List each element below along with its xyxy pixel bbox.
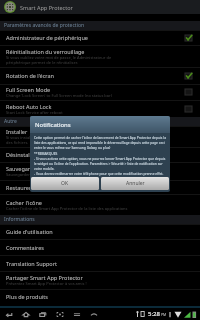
button[interactable]: Smart App Protector bbox=[0, 0, 200, 14]
button[interactable]: Commentaires bbox=[0, 239, 200, 255]
staticText: Désinstaller bbox=[6, 151, 37, 158]
button[interactable]: Translation Support bbox=[0, 255, 200, 271]
button[interactable]: Administrateur de périphérique bbox=[0, 30, 200, 45]
button[interactable]: Installer bbox=[0, 126, 200, 147]
button[interactable]: Réinitialisation du verrouillage bbox=[0, 45, 200, 67]
staticText: Cacher l'icône de Smart App Protector de… bbox=[6, 206, 128, 211]
staticText: Cacher l'icône bbox=[6, 199, 42, 206]
staticText: **REMARQUES - Si vous activez cette opti… bbox=[34, 151, 167, 176]
button[interactable]: Screen capture bbox=[51, 308, 68, 320]
staticText: Partager Smart App Protector bbox=[6, 274, 83, 281]
staticText: Si vous oubliez votre mot de passe, le A… bbox=[6, 55, 112, 65]
staticText: Administrateur de périphérique bbox=[6, 34, 88, 41]
button[interactable]: Hide navigation bar bbox=[85, 308, 102, 320]
staticText: Informations bbox=[4, 216, 35, 223]
button[interactable]: Restaurer bbox=[0, 180, 200, 194]
staticText: Paramètres avancés de protection bbox=[4, 22, 85, 29]
staticText: Start Lock Service after reboot bbox=[6, 110, 63, 115]
staticText: PM bbox=[161, 312, 167, 317]
staticText: Full Screen Mode bbox=[6, 86, 51, 93]
staticText: Commentaires bbox=[6, 244, 44, 251]
staticText: Installer bbox=[6, 128, 28, 135]
button[interactable]: Full Screen Mode bbox=[0, 84, 200, 100]
button[interactable]: Recent apps bbox=[34, 308, 51, 320]
button[interactable]: OK bbox=[31, 177, 99, 190]
staticText: Translation Support bbox=[6, 260, 57, 267]
button[interactable]: Annuler bbox=[101, 177, 169, 190]
staticText: Sauvegarder les paramètres bbox=[6, 172, 59, 177]
staticText: Reboot Auto Lock bbox=[6, 103, 52, 110]
button[interactable]: Rotation de l'écran bbox=[0, 67, 200, 84]
button[interactable]: Guide d'utilisation bbox=[0, 224, 200, 239]
staticText: Restaurer bbox=[6, 184, 32, 191]
staticText: Guide d'utilisation bbox=[6, 228, 53, 235]
staticText: 5:28 bbox=[148, 310, 160, 318]
button[interactable]: Partager Smart App Protector bbox=[0, 271, 200, 289]
button[interactable]: Sauvegarde bbox=[0, 162, 200, 180]
staticText: Autre bbox=[4, 118, 17, 125]
staticText: Notifications bbox=[35, 121, 71, 129]
button[interactable]: Cacher l'icône bbox=[0, 194, 200, 215]
button[interactable]: Plus de produits bbox=[0, 289, 200, 304]
staticText: Change 'Lock Screen' to Full Screen mode… bbox=[6, 93, 112, 98]
staticText: Si vous installez ce fichier, vous pourr… bbox=[6, 135, 100, 145]
button[interactable]: Keyboard bbox=[68, 308, 85, 320]
staticText: Sauvegarde bbox=[6, 165, 37, 172]
staticText: Présentez Smart App Protector à vos amis… bbox=[6, 281, 87, 286]
button[interactable]: Reboot Auto Lock bbox=[0, 100, 200, 117]
staticText: Réinitialisation du verrouillage bbox=[6, 48, 85, 55]
button[interactable]: Home bbox=[17, 308, 34, 320]
staticText: Cette option permet de cacher l'icône de… bbox=[34, 135, 167, 150]
staticText: Smart App Protector bbox=[20, 4, 73, 11]
staticText: OK bbox=[61, 180, 69, 187]
staticText: Annuler bbox=[126, 180, 145, 187]
button[interactable]: Désinstaller bbox=[0, 147, 200, 162]
button[interactable]: Back bbox=[0, 308, 17, 320]
staticText: Rotation de l'écran bbox=[6, 72, 55, 79]
staticText: Plus de produits bbox=[6, 293, 48, 300]
